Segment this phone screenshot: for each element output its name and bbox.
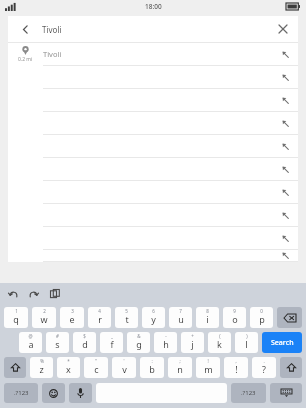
staticText: h — [163, 338, 169, 350]
button[interactable]: Insert suggestion — [272, 66, 298, 88]
staticText: n — [177, 363, 183, 375]
button[interactable]: Shift — [280, 357, 302, 378]
button[interactable]: Insert suggestion — [272, 89, 298, 111]
button[interactable]: ! — [196, 357, 220, 378]
button[interactable]: Backspace — [277, 307, 302, 328]
staticText: b — [149, 363, 155, 375]
button[interactable]: Insert suggestion — [8, 204, 298, 227]
button[interactable]: Insert suggestion — [8, 250, 298, 262]
button[interactable]: 0 — [250, 307, 273, 328]
button[interactable]: Insert suggestion — [8, 181, 298, 204]
staticText: ! — [235, 363, 238, 375]
button[interactable]: Undo — [6, 287, 20, 301]
button[interactable]: Clear — [268, 16, 298, 42]
staticText: @ — [28, 333, 33, 339]
staticText: d — [82, 338, 88, 350]
button[interactable]: Insert suggestion — [272, 181, 298, 203]
staticText: ( — [219, 333, 221, 339]
button[interactable]: Insert suggestion — [8, 135, 298, 158]
button[interactable]: .?123 — [231, 383, 266, 403]
button[interactable]: @ — [19, 332, 42, 353]
button[interactable]: Insert suggestion — [8, 89, 298, 112]
staticText: 1 — [15, 308, 18, 314]
staticText: " — [95, 358, 97, 364]
button[interactable]: Insert suggestion — [8, 112, 298, 135]
button[interactable]: 3 — [60, 307, 84, 328]
staticText: f — [110, 338, 114, 350]
button[interactable]: ) — [235, 332, 258, 353]
button[interactable]: ( — [208, 332, 231, 353]
button[interactable]: # — [46, 332, 69, 353]
staticText: .?123 — [14, 389, 29, 397]
staticText: 6 — [152, 308, 155, 314]
button[interactable]: * — [57, 357, 80, 378]
button[interactable]: Insert suggestion — [272, 135, 298, 157]
staticText: 2 — [43, 308, 46, 314]
staticText: : — [151, 358, 153, 364]
button[interactable]: Insert suggestion — [272, 112, 298, 134]
staticText: ! — [207, 358, 209, 364]
button[interactable]: : — [140, 357, 164, 378]
staticText: 18:00 — [145, 2, 162, 11]
button[interactable]: . — [252, 357, 276, 378]
button[interactable]: 8 — [196, 307, 219, 328]
button[interactable]: Voice input — [69, 383, 92, 403]
button[interactable]: 0.2 mi — [8, 43, 298, 66]
button[interactable]: Insert suggestion — [8, 227, 298, 250]
button[interactable]: % — [30, 357, 53, 378]
staticText: # — [56, 333, 59, 339]
button[interactable]: + — [181, 332, 204, 353]
staticText: c — [94, 363, 99, 375]
button[interactable]: 5 — [115, 307, 138, 328]
button[interactable]: Insert suggestion — [272, 204, 298, 226]
button[interactable]: _ — [100, 332, 123, 353]
button[interactable]: Insert suggestion — [8, 66, 298, 89]
staticText: ; — [179, 358, 181, 364]
staticText: r — [98, 313, 102, 325]
button[interactable]: " — [84, 357, 108, 378]
staticText: ) — [246, 333, 248, 339]
staticText: * — [67, 358, 70, 364]
button[interactable]: Insert suggestion — [272, 43, 298, 65]
staticText: - — [165, 333, 167, 339]
button[interactable]: Search — [262, 332, 302, 353]
staticText: ? — [262, 363, 266, 375]
button[interactable]: Back — [8, 16, 298, 42]
button[interactable]: Shift — [4, 357, 26, 378]
button[interactable]: $ — [73, 332, 96, 353]
staticText: Tivoli — [43, 49, 272, 59]
button[interactable]: ' — [112, 357, 136, 378]
button[interactable]: - — [154, 332, 177, 353]
staticText: i — [206, 313, 209, 325]
staticText: o — [232, 313, 238, 325]
button[interactable]: 2 — [32, 307, 56, 328]
staticText: l — [245, 338, 248, 350]
staticText: 8 — [206, 308, 209, 314]
staticText: t — [125, 313, 129, 325]
button[interactable]: ; — [168, 357, 192, 378]
button[interactable]: Copy — [48, 287, 62, 301]
button[interactable]: Redo — [27, 287, 41, 301]
button[interactable]: Insert suggestion — [272, 250, 298, 261]
button[interactable]: & — [127, 332, 150, 353]
button[interactable]: Back — [8, 16, 42, 42]
button[interactable]: 1 — [4, 307, 28, 328]
button[interactable]: .?123 — [4, 383, 38, 403]
button[interactable]: 7 — [169, 307, 192, 328]
staticText: Search — [271, 338, 294, 348]
button[interactable]: 6 — [142, 307, 165, 328]
staticText: w — [40, 313, 48, 325]
button[interactable]: Insert suggestion — [272, 227, 298, 249]
button[interactable]: Insert suggestion — [8, 158, 298, 181]
button[interactable]: 9 — [223, 307, 246, 328]
staticText: , — [235, 358, 237, 364]
button[interactable]: 4 — [88, 307, 111, 328]
staticText: . — [263, 358, 265, 364]
button[interactable]: , — [224, 357, 248, 378]
button[interactable]: Insert suggestion — [272, 158, 298, 180]
button[interactable]: Hide keyboard — [270, 383, 302, 403]
button[interactable]: Emoji — [42, 383, 65, 403]
staticText: % — [40, 358, 44, 364]
staticText: 5 — [125, 308, 128, 314]
